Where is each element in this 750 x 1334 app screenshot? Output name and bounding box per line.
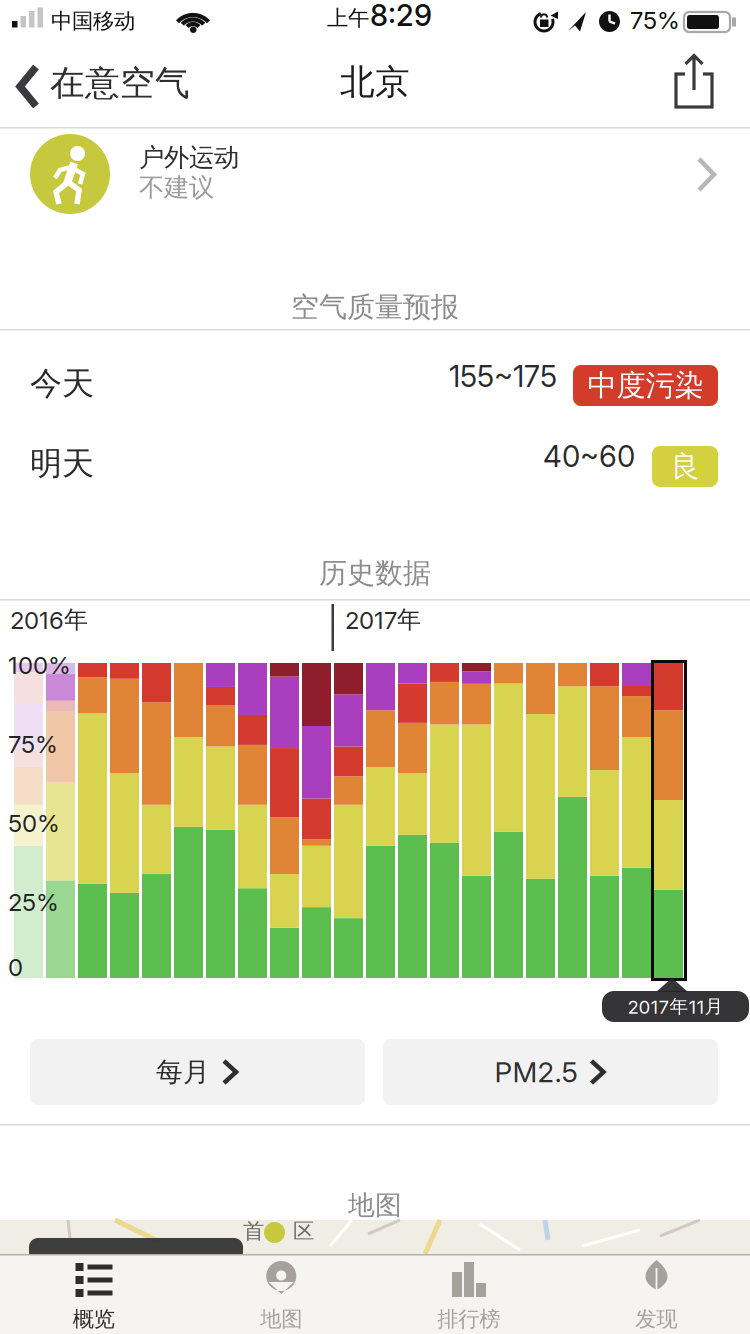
staticText: 不建议	[139, 172, 214, 203]
button[interactable]: 分享	[666, 52, 722, 114]
staticText: 排行榜	[437, 1306, 500, 1332]
button[interactable]: 返回 在意空气	[14, 58, 214, 116]
staticText: 2017年	[345, 605, 421, 634]
staticText: 区	[293, 1218, 314, 1244]
staticText: 地图	[260, 1306, 302, 1332]
staticText: 50%	[8, 809, 60, 837]
staticText: 明天	[30, 444, 94, 483]
button[interactable]: 概览	[0, 1255, 187, 1334]
button[interactable]: 发现	[562, 1255, 750, 1334]
staticText: 155~175	[449, 359, 557, 394]
staticText: 40~60	[543, 439, 635, 474]
staticText: 0	[8, 953, 23, 981]
staticText: 25%	[8, 888, 59, 916]
staticText: 2017年11月	[627, 995, 723, 1018]
staticText: 8:29	[370, 0, 432, 33]
staticText: 100%	[8, 651, 71, 679]
staticText: 中度污染	[587, 367, 703, 403]
button[interactable]: 排行榜	[375, 1255, 562, 1334]
staticText: PM2.5	[494, 1055, 577, 1088]
staticText: 概览	[73, 1306, 115, 1332]
staticText: 中国移动	[51, 8, 135, 34]
button[interactable]: PM2.5	[383, 1039, 718, 1105]
button[interactable]: 每月	[30, 1039, 365, 1105]
staticText: 历史数据	[319, 556, 431, 590]
staticText: 户外运动	[139, 142, 239, 173]
staticText: 发现	[635, 1306, 677, 1332]
staticText: 在意空气	[50, 62, 190, 105]
staticText: 75%	[630, 6, 680, 34]
button[interactable]: 户外运动	[0, 128, 750, 220]
staticText: 2016年	[10, 605, 88, 634]
staticText: 北京	[340, 61, 410, 104]
button[interactable]: 地图	[187, 1255, 375, 1334]
staticText: 今天	[30, 364, 94, 403]
staticText: 上午	[327, 5, 369, 31]
staticText: 地图	[348, 1189, 402, 1222]
staticText: 75%	[8, 730, 58, 758]
staticText: 每月	[156, 1056, 210, 1088]
staticText: 良	[670, 448, 699, 484]
staticText: 空气质量预报	[291, 290, 459, 324]
staticText: 首	[243, 1218, 264, 1244]
